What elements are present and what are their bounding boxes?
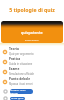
staticText: Guida in situazione <box>9 62 33 66</box>
staticText: Esame <box>9 67 20 71</box>
staticText: ALTRI QUIZ <box>11 97 24 100</box>
staticText: Punto debole <box>9 77 31 81</box>
button[interactable]: ALTRI QUIZ <box>10 97 25 100</box>
button[interactable]: Scarica l'app <box>3 89 7 93</box>
staticText: Quiz per argomento <box>9 52 34 56</box>
staticText: Ripassa i tuoi errori <box>9 82 33 86</box>
staticText: inizia subito <box>25 38 39 41</box>
button[interactable]: Teoria <box>0 46 64 56</box>
button[interactable]: Scarica l'app <box>3 97 7 100</box>
staticText: Pratica <box>9 57 21 61</box>
button[interactable]: Pratica <box>0 56 64 66</box>
staticText: Simulazione ufficiale <box>9 72 35 76</box>
button[interactable]: Esame <box>0 66 64 76</box>
staticText: Teoria <box>9 47 19 51</box>
button[interactable]: quizpatente <box>1 21 63 43</box>
staticText: quizpatente <box>21 30 43 35</box>
staticText: SCARICA L'APP GRATIS <box>10 89 33 94</box>
staticText: 5 tipologie di quiz <box>9 6 55 13</box>
button[interactable]: Punto debole <box>0 76 64 86</box>
button[interactable]: SCARICA L'APP GRATIS <box>10 89 33 94</box>
